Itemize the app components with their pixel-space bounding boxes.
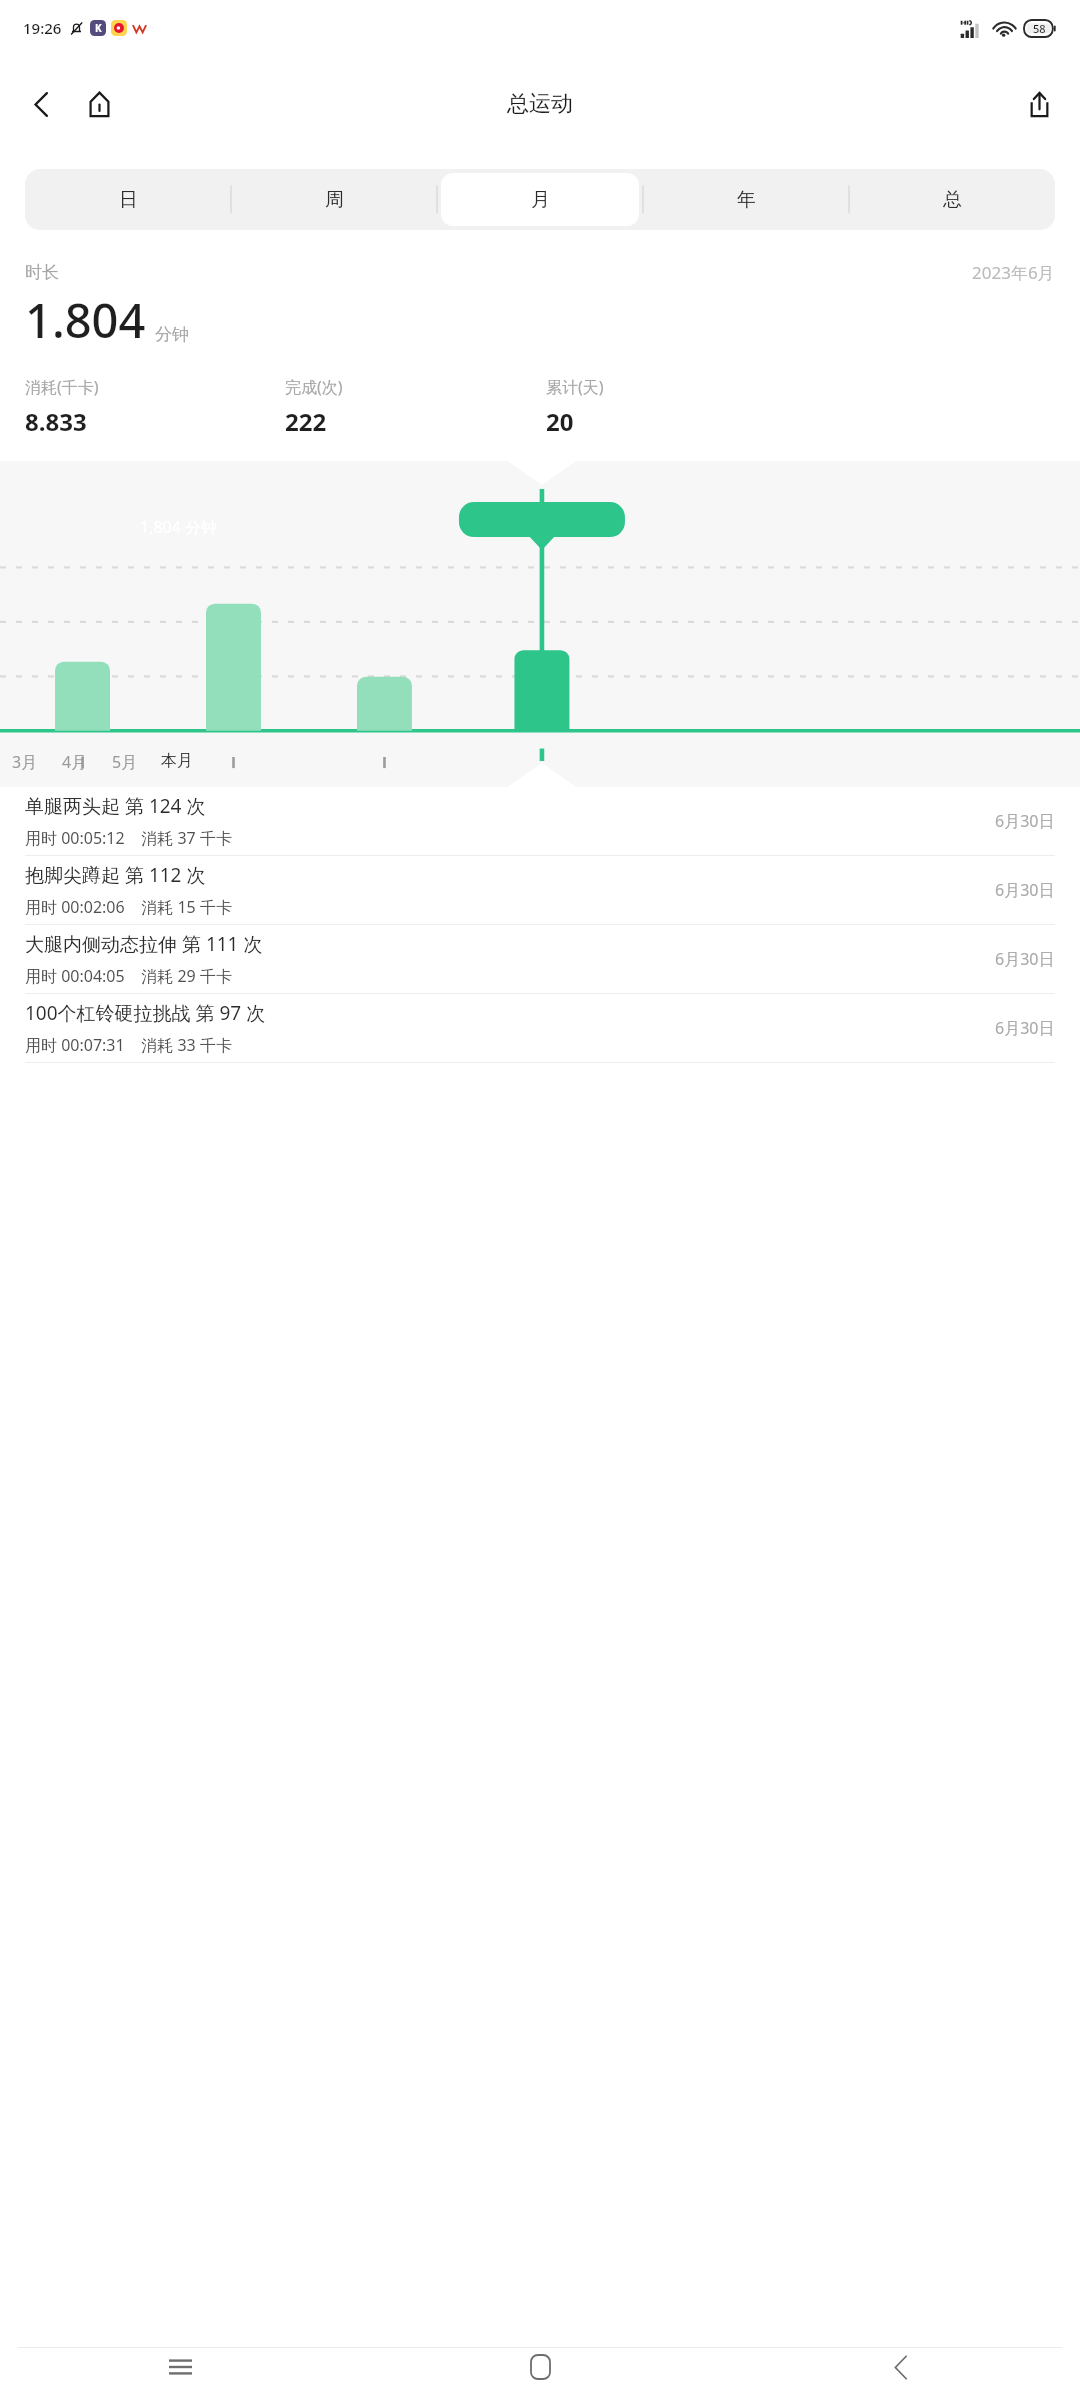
staticText: 6月30日 bbox=[995, 948, 1055, 970]
button[interactable]: 周 bbox=[235, 173, 433, 226]
button[interactable]: 总 bbox=[853, 173, 1051, 226]
staticText: 总 bbox=[943, 188, 962, 212]
staticText: 消耗(千卡) bbox=[25, 376, 99, 398]
button[interactable]: 单腿两头起 第 124 次 bbox=[0, 787, 1080, 855]
staticText: 6月30日 bbox=[995, 1017, 1055, 1039]
staticText: 分钟 bbox=[155, 324, 189, 345]
button[interactable]: Home bbox=[360, 2348, 720, 2386]
staticText: 用时 00:07:31 消耗 33 千卡 bbox=[25, 1034, 232, 1056]
button[interactable]: 年 bbox=[647, 173, 845, 226]
button[interactable]: Back bbox=[12, 75, 70, 133]
staticText: 月 bbox=[531, 188, 550, 212]
staticText: 58 bbox=[1033, 21, 1046, 36]
staticText: 6月30日 bbox=[995, 810, 1055, 832]
staticText: 2023年6月 bbox=[972, 261, 1055, 284]
staticText: 4月 bbox=[62, 751, 88, 773]
staticText: 完成(次) bbox=[285, 376, 343, 398]
staticText: 年 bbox=[737, 188, 756, 212]
button[interactable]: 100个杠铃硬拉挑战 第 97 次 bbox=[0, 994, 1080, 1062]
staticText: 用时 00:05:12 消耗 37 千卡 bbox=[25, 827, 232, 849]
staticText: 周 bbox=[325, 188, 344, 212]
staticText: 累计(天) bbox=[546, 376, 604, 398]
staticText: 100个杠铃硬拉挑战 第 97 次 bbox=[25, 1000, 266, 1026]
button[interactable]: 抱脚尖蹲起 第 112 次 bbox=[0, 856, 1080, 924]
button[interactable]: 月 bbox=[441, 173, 639, 226]
button[interactable]: 大腿内侧动态拉伸 第 111 次 bbox=[0, 925, 1080, 993]
staticText: 时长 bbox=[25, 262, 59, 283]
staticText: 8.833 bbox=[25, 405, 87, 438]
staticText: 3月 bbox=[12, 751, 38, 773]
staticText: 用时 00:02:06 消耗 15 千卡 bbox=[25, 896, 232, 918]
staticText: 6月30日 bbox=[995, 879, 1055, 901]
staticText: 19:26 bbox=[23, 18, 62, 38]
staticText: 222 bbox=[285, 405, 327, 438]
staticText: 总运动 bbox=[507, 90, 573, 118]
staticText: 20 bbox=[546, 405, 574, 438]
button[interactable]: Recent apps bbox=[0, 2348, 360, 2386]
staticText: 5月 bbox=[112, 751, 138, 773]
button[interactable]: Share bbox=[1010, 75, 1068, 133]
staticText: 1.804 bbox=[25, 288, 146, 352]
button[interactable]: Back bbox=[720, 2348, 1080, 2386]
staticText: 日 bbox=[119, 188, 138, 212]
staticText: 抱脚尖蹲起 第 112 次 bbox=[25, 862, 206, 888]
staticText: 本月 bbox=[161, 751, 193, 771]
button[interactable]: 日 bbox=[29, 173, 227, 226]
staticText: 单腿两头起 第 124 次 bbox=[25, 793, 206, 819]
staticText: K bbox=[95, 21, 102, 35]
button[interactable]: Home bbox=[70, 75, 128, 133]
staticText: 大腿内侧动态拉伸 第 111 次 bbox=[25, 931, 263, 957]
staticText: 用时 00:04:05 消耗 29 千卡 bbox=[25, 965, 232, 987]
